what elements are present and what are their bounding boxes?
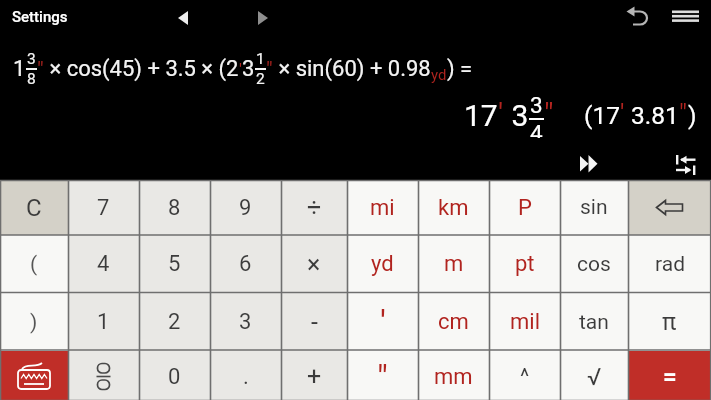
staticText: ) = bbox=[447, 56, 473, 82]
staticText: ^ bbox=[520, 364, 530, 390]
staticText: ′ bbox=[498, 96, 504, 131]
button[interactable]: mi bbox=[347, 180, 418, 235]
staticText: m bbox=[444, 251, 464, 277]
button[interactable]: + bbox=[281, 351, 347, 400]
staticText: 9 bbox=[239, 195, 252, 221]
button[interactable]: pt bbox=[489, 235, 560, 293]
button[interactable]: 5 bbox=[139, 235, 210, 293]
button[interactable] bbox=[628, 180, 711, 235]
button[interactable]: 2 bbox=[139, 293, 210, 351]
button[interactable]: m bbox=[418, 235, 489, 293]
button[interactable]: 7 bbox=[68, 180, 139, 235]
staticText: ) bbox=[30, 310, 38, 335]
staticText: + bbox=[307, 362, 322, 391]
staticText: 8 bbox=[168, 195, 181, 221]
button[interactable] bbox=[0, 351, 68, 400]
staticText: mm bbox=[434, 364, 473, 390]
staticText: × bbox=[307, 250, 321, 279]
button[interactable]: P bbox=[489, 180, 560, 235]
staticText: 3 bbox=[504, 98, 529, 133]
staticText: π bbox=[662, 308, 677, 336]
staticText: × sin(60) + 0.98 bbox=[273, 56, 431, 82]
button[interactable]: 8 bbox=[139, 180, 210, 235]
staticText: mil bbox=[510, 309, 540, 335]
button[interactable]: Settings bbox=[6, 2, 74, 32]
staticText: √ bbox=[587, 363, 602, 391]
staticText: = bbox=[663, 363, 677, 391]
staticText: 4 bbox=[97, 251, 110, 277]
button[interactable]: cos bbox=[560, 235, 628, 293]
button[interactable]: km bbox=[418, 180, 489, 235]
button[interactable]: 6 bbox=[210, 235, 281, 293]
button[interactable]: . bbox=[210, 351, 281, 400]
staticText: cos bbox=[577, 252, 611, 277]
staticText: 1 bbox=[97, 309, 110, 335]
button[interactable]: ′ bbox=[347, 293, 418, 351]
staticText: ″ bbox=[266, 57, 273, 82]
button[interactable] bbox=[668, 148, 704, 178]
button[interactable]: sin bbox=[560, 180, 628, 235]
staticText: ′ bbox=[620, 99, 625, 128]
button[interactable] bbox=[570, 148, 606, 178]
staticText: 2 bbox=[168, 309, 181, 335]
staticText: sin bbox=[580, 195, 608, 220]
button[interactable]: yd bbox=[347, 235, 418, 293]
button[interactable]: C bbox=[0, 180, 68, 235]
button[interactable]: mm bbox=[418, 351, 489, 400]
button[interactable]: 4 bbox=[68, 235, 139, 293]
staticText: Settings bbox=[12, 8, 68, 26]
staticText: C bbox=[26, 194, 42, 222]
staticText: ÷ bbox=[307, 193, 322, 222]
button[interactable] bbox=[68, 351, 139, 400]
button[interactable]: ^ bbox=[489, 351, 560, 400]
staticText: ) bbox=[688, 101, 697, 130]
button[interactable]: mil bbox=[489, 293, 560, 351]
staticText: mi bbox=[370, 195, 395, 221]
button[interactable]: 3 bbox=[210, 293, 281, 351]
staticText: 3 bbox=[242, 56, 255, 82]
button[interactable]: √ bbox=[560, 351, 628, 400]
button[interactable]: ″ bbox=[347, 351, 418, 400]
staticText: ″ bbox=[37, 57, 44, 82]
staticText: 0 bbox=[168, 364, 181, 390]
button[interactable]: rad bbox=[628, 235, 711, 293]
staticText: 4 bbox=[530, 120, 543, 138]
button[interactable] bbox=[168, 4, 198, 32]
staticText: ″ bbox=[679, 99, 688, 128]
staticText: 1 bbox=[13, 56, 26, 82]
staticText: 3.81 bbox=[625, 101, 679, 130]
button[interactable]: - bbox=[281, 293, 347, 351]
button[interactable]: ÷ bbox=[281, 180, 347, 235]
staticText: P bbox=[518, 195, 532, 221]
staticText: . bbox=[243, 364, 249, 390]
staticText: 6 bbox=[239, 251, 252, 277]
staticText: pt bbox=[515, 251, 535, 277]
button[interactable]: cm bbox=[418, 293, 489, 351]
button[interactable] bbox=[620, 2, 654, 32]
staticText: cm bbox=[438, 309, 469, 335]
button[interactable] bbox=[248, 4, 278, 32]
staticText: ′ bbox=[380, 302, 386, 342]
staticText: ″ bbox=[544, 96, 554, 131]
button[interactable]: ( bbox=[0, 235, 68, 293]
button[interactable]: × bbox=[281, 235, 347, 293]
staticText: rad bbox=[655, 252, 685, 277]
staticText: ( bbox=[30, 252, 38, 277]
button[interactable]: ) bbox=[0, 293, 68, 351]
staticText: 5 bbox=[168, 251, 181, 277]
staticText: 3 bbox=[27, 50, 36, 68]
staticText: 8 bbox=[27, 70, 36, 88]
staticText: 3 bbox=[239, 309, 252, 335]
button[interactable]: 0 bbox=[139, 351, 210, 400]
staticText: × cos(45) + 3.5 × (2 bbox=[44, 56, 239, 82]
staticText: 2 bbox=[256, 70, 265, 88]
button[interactable]: 9 bbox=[210, 180, 281, 235]
button[interactable]: = bbox=[628, 351, 711, 400]
button[interactable]: 1 bbox=[68, 293, 139, 351]
staticText: 7 bbox=[97, 195, 110, 221]
staticText: yd bbox=[371, 251, 394, 277]
button[interactable]: tan bbox=[560, 293, 628, 351]
button[interactable]: π bbox=[628, 293, 711, 351]
button[interactable] bbox=[666, 2, 706, 32]
staticText: 17 bbox=[464, 98, 498, 133]
